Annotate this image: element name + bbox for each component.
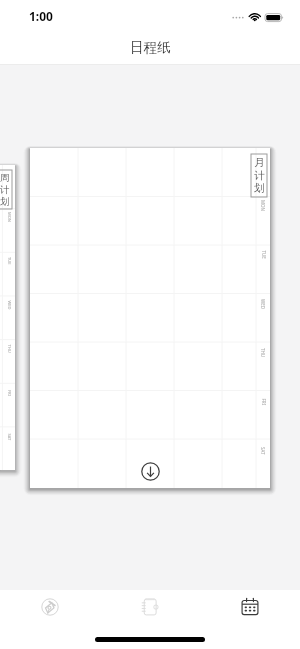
staticText: 日程纸	[130, 39, 171, 56]
staticText: MON	[260, 200, 266, 212]
staticText: FRI	[6, 390, 12, 396]
staticText: 计	[0, 184, 10, 196]
staticText: FRI	[260, 398, 266, 405]
staticText: 1:00	[29, 8, 53, 24]
staticText: SAT	[260, 447, 266, 455]
staticText: THU	[260, 348, 266, 358]
staticText: 计	[254, 169, 265, 182]
staticText: 月	[254, 156, 265, 169]
staticText: THU	[5, 344, 11, 353]
staticText: TUE	[260, 250, 266, 259]
staticText: WED	[260, 299, 266, 309]
staticText: MON	[6, 212, 12, 222]
staticText: 划	[0, 196, 10, 208]
staticText: WED	[5, 300, 11, 309]
staticText: 划	[254, 182, 265, 195]
staticText: TUE	[6, 257, 12, 265]
button[interactable]: Calendar	[200, 590, 300, 624]
button[interactable]: 周	[0, 165, 15, 470]
staticText: 周	[0, 172, 10, 184]
button[interactable]: Download	[141, 462, 160, 481]
button[interactable]: Notebook	[100, 590, 200, 624]
button[interactable]: 月	[30, 148, 270, 488]
staticText: SAT	[5, 433, 11, 440]
button[interactable]: Draw	[0, 590, 100, 624]
